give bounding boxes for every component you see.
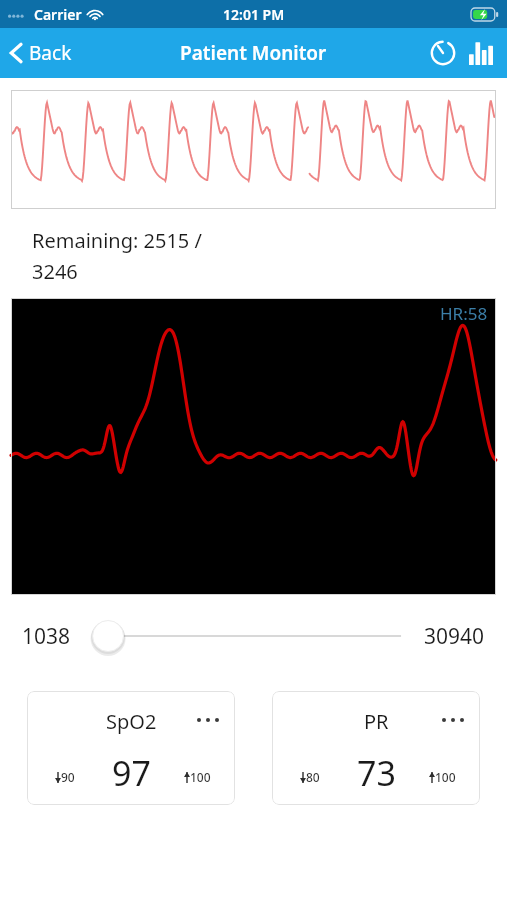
staticText: 73 <box>357 750 396 796</box>
button[interactable]: Timer <box>425 35 461 71</box>
button[interactable]: PR <box>272 691 480 805</box>
staticText: Carrier <box>34 5 82 24</box>
button[interactable]: Position slider <box>71 614 424 658</box>
staticText: 1038 <box>22 622 71 651</box>
staticText: 12:01 PM <box>223 5 285 24</box>
button[interactable]: Back <box>0 34 84 72</box>
staticText: 100 <box>190 769 211 785</box>
staticText: Remaining: 2515 / 3246 <box>32 227 202 284</box>
staticText: SpO2 <box>106 708 157 735</box>
staticText: 30940 <box>424 622 485 651</box>
staticText: HR:58 <box>440 302 488 325</box>
staticText: 100 <box>435 769 456 785</box>
staticText: 97 <box>112 750 151 796</box>
button[interactable]: SpO2 <box>27 691 235 805</box>
staticText: 80 <box>306 769 320 785</box>
staticText: PR <box>364 708 389 735</box>
button[interactable]: Statistics <box>465 37 497 69</box>
button[interactable]: More options for PR <box>438 713 468 727</box>
staticText: Back <box>29 40 72 66</box>
staticText: Patient Monitor <box>180 40 327 66</box>
button[interactable]: More options for SpO2 <box>193 713 223 727</box>
staticText: 90 <box>61 769 75 785</box>
